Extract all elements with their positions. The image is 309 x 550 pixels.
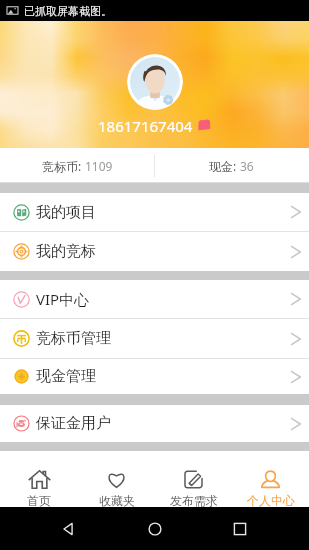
staticText: VIP中心 xyxy=(36,289,90,309)
staticText: 1109 xyxy=(85,158,113,174)
button[interactable]: 个人中心 xyxy=(232,462,309,507)
staticText: 首页 xyxy=(27,493,51,507)
button[interactable]: User avatar xyxy=(127,54,183,110)
staticText: 现金管理 xyxy=(36,367,96,386)
staticText: 现金: xyxy=(209,158,240,174)
staticText: 竞标币: xyxy=(42,158,85,174)
button[interactable]: 现金管理 xyxy=(0,359,309,394)
button[interactable]: 保证金用户 xyxy=(0,405,309,442)
button[interactable]: 发布需求 xyxy=(155,462,232,507)
staticText: 个人中心 xyxy=(247,493,295,507)
button[interactable]: 首页 xyxy=(0,462,78,507)
button[interactable]: 设置 xyxy=(0,451,309,489)
staticText: 18617167404 xyxy=(98,116,193,136)
button[interactable]: Back xyxy=(52,512,86,546)
button[interactable]: 竞标币管理 xyxy=(0,319,309,358)
staticText: 已抓取屏幕截图。 xyxy=(24,4,112,18)
staticText: 竞标币管理 xyxy=(36,329,111,348)
staticText: 发布需求 xyxy=(170,493,218,507)
button[interactable]: 我的竞标 xyxy=(0,232,309,271)
staticText: 保证金用户 xyxy=(36,414,111,433)
button[interactable]: Home xyxy=(138,512,172,546)
button[interactable]: 收藏夹 xyxy=(78,462,155,507)
button[interactable]: 竞标币: xyxy=(0,148,154,183)
staticText: 设置 xyxy=(36,461,66,480)
staticText: 收藏夹 xyxy=(99,493,135,507)
button[interactable]: VIP中心 xyxy=(0,280,309,318)
staticText: 我的竞标 xyxy=(36,242,96,261)
button[interactable]: Recent apps xyxy=(223,512,257,546)
staticText: 36 xyxy=(240,158,254,174)
button[interactable]: 我的项目 xyxy=(0,193,309,231)
button[interactable]: 现金: xyxy=(154,148,309,183)
staticText: 我的项目 xyxy=(36,203,96,222)
